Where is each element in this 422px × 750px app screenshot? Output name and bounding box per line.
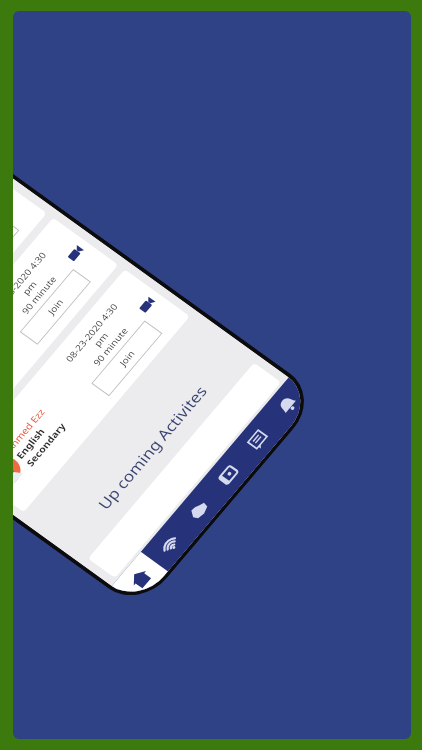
button[interactable]: Courses	[163, 476, 234, 544]
staticText: Secondary	[15, 417, 77, 471]
button[interactable]: Join video call	[58, 236, 93, 270]
button[interactable]: Join video call	[13, 185, 21, 219]
button[interactable]: Live sessions	[134, 511, 204, 578]
button[interactable]: Exams	[222, 406, 293, 473]
staticText: Ahmed Ezz	[13, 403, 56, 456]
staticText: Join	[42, 294, 69, 319]
button[interactable]: Ahmed Ezz	[13, 99, 14, 373]
button[interactable]: Up coming Activites	[13, 295, 301, 580]
button[interactable]: Wallet	[193, 441, 263, 508]
button[interactable]: Notifications	[252, 371, 323, 438]
staticText: pm	[17, 276, 42, 300]
staticText: 90 minute	[83, 323, 137, 370]
button[interactable]	[49, 356, 320, 585]
button[interactable]: Join	[13, 265, 103, 349]
button[interactable]: Join	[13, 213, 32, 297]
staticText: English	[13, 423, 53, 464]
staticText: Up coming Activites	[70, 377, 236, 518]
button[interactable]: Join video call	[130, 288, 164, 322]
staticText: pm	[89, 328, 114, 351]
staticText: 08-23-2020 4:30	[52, 299, 132, 366]
staticText: Join	[114, 346, 140, 371]
staticText: 08-23-2020 4:30	[13, 247, 60, 315]
button[interactable]: Ahmed Ezz	[13, 202, 157, 476]
button[interactable]: Home	[105, 545, 175, 612]
button[interactable]: Ahmed Ezz	[13, 254, 229, 528]
button[interactable]: Ahmed Ezz	[13, 150, 86, 425]
staticText: 90 minute	[13, 271, 66, 319]
button[interactable]: Join	[79, 316, 175, 400]
